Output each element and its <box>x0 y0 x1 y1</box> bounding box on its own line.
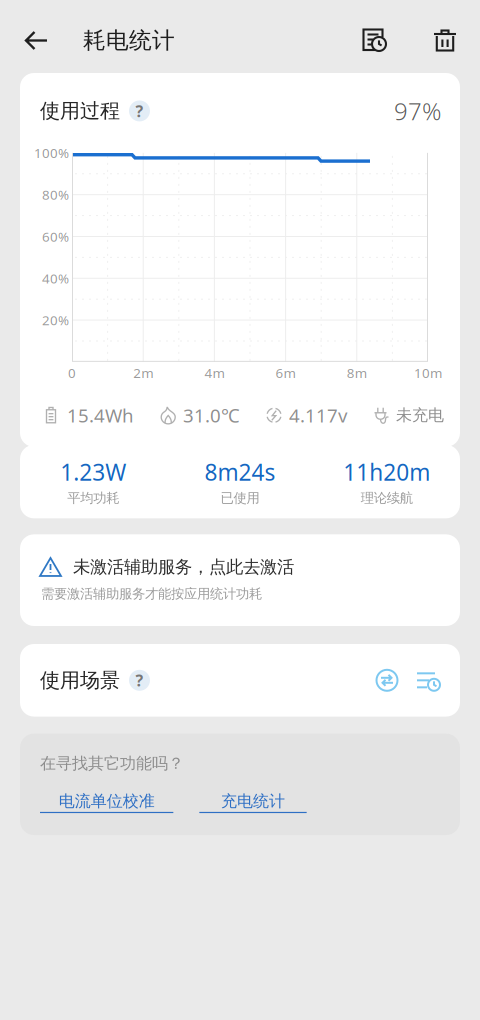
staticText: ? <box>135 670 143 691</box>
staticText: 4.117v <box>289 403 347 428</box>
staticText: 20% <box>42 311 69 329</box>
staticText: 6m <box>276 364 296 382</box>
staticText: 15.4Wh <box>67 403 134 428</box>
staticText: 11h20m <box>343 457 430 487</box>
staticText: 31.0℃ <box>183 403 240 428</box>
staticText: 平均功耗 <box>67 490 119 506</box>
staticText: ? <box>135 100 143 121</box>
staticText: 未激活辅助服务，点此去激活 <box>73 556 294 578</box>
staticText: 理论续航 <box>361 490 413 506</box>
staticText: 0 <box>68 364 76 382</box>
staticText: 1.23W <box>60 457 126 487</box>
staticText: 40% <box>42 269 69 287</box>
staticText: 8m24s <box>204 457 275 487</box>
button[interactable]: 电流单位校准 <box>40 791 173 813</box>
staticText: 充电统计 <box>221 791 285 811</box>
staticText: 使用过程 <box>40 99 120 123</box>
staticText: 使用场景 <box>40 668 120 693</box>
staticText: 8m <box>347 364 367 382</box>
button[interactable]: Delete records <box>421 8 469 66</box>
staticText: 80% <box>42 186 69 203</box>
button[interactable]: Recent <box>416 668 441 692</box>
staticText: 10m <box>414 364 442 382</box>
button[interactable]: Sort order <box>375 668 399 692</box>
staticText: 未充电 <box>396 405 444 425</box>
button[interactable]: 充电统计 <box>199 791 307 813</box>
staticText: 97% <box>394 95 441 127</box>
button[interactable]: 未激活辅助服务，点此去激活 <box>20 534 460 626</box>
staticText: 2m <box>133 364 153 382</box>
staticText: 60% <box>42 228 69 245</box>
staticText: 需要激活辅助服务才能按应用统计功耗 <box>41 586 262 602</box>
staticText: 已使用 <box>220 490 259 506</box>
staticText: 4m <box>204 364 224 382</box>
button[interactable]: Back <box>13 10 60 65</box>
staticText: 在寻找其它功能吗？ <box>40 754 184 773</box>
button[interactable]: Usage history <box>350 9 399 66</box>
staticText: 耗电统计 <box>83 27 175 54</box>
staticText: 电流单位校准 <box>59 791 155 811</box>
staticText: 100% <box>34 144 69 162</box>
